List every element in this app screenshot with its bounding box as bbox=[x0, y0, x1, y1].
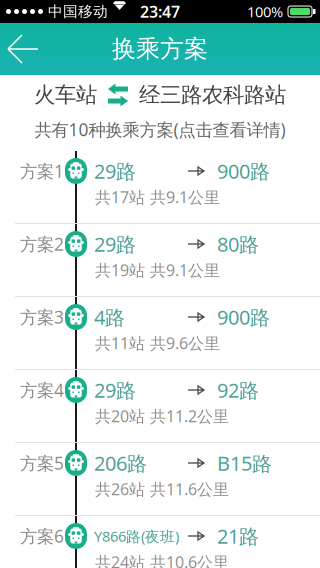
button[interactable]: 方案1 bbox=[0, 151, 320, 223]
staticText: 206路 bbox=[94, 450, 147, 476]
staticText: 100% bbox=[247, 2, 283, 21]
button[interactable]: 方案3 bbox=[0, 297, 320, 369]
staticText: 方案1 bbox=[20, 159, 64, 182]
staticText: 中国移动 bbox=[48, 2, 108, 20]
staticText: 方案4 bbox=[20, 378, 64, 401]
staticText: 29路 bbox=[94, 377, 136, 403]
staticText: 共20站 共11.2公里 bbox=[95, 405, 229, 427]
staticText: B15路 bbox=[217, 450, 272, 476]
staticText: 900路 bbox=[217, 158, 270, 184]
staticText: 换乘方案 bbox=[112, 34, 208, 64]
staticText: 29路 bbox=[94, 231, 136, 257]
staticText: 方案6 bbox=[20, 524, 64, 547]
staticText: 共19站 共9.1公里 bbox=[95, 259, 220, 281]
staticText: 共26站 共11.6公里 bbox=[95, 478, 229, 500]
staticText: 方案5 bbox=[20, 451, 64, 474]
staticText: 900路 bbox=[217, 304, 270, 330]
staticText: 经三路农科路站 bbox=[139, 82, 286, 108]
button[interactable]: 方案2 bbox=[0, 224, 320, 296]
staticText: 方案2 bbox=[20, 232, 64, 255]
staticText: 共17站 共9.1公里 bbox=[95, 186, 220, 208]
staticText: 火车站 bbox=[34, 82, 97, 108]
button[interactable]: Back bbox=[0, 23, 46, 75]
staticText: 92路 bbox=[217, 377, 259, 403]
staticText: 80路 bbox=[217, 231, 259, 257]
staticText: 4路 bbox=[94, 304, 125, 330]
staticText: 共24站 共10.6公里 bbox=[95, 551, 229, 568]
staticText: 共11站 共9.6公里 bbox=[95, 332, 220, 354]
button[interactable]: 方案4 bbox=[0, 370, 320, 442]
staticText: 29路 bbox=[94, 158, 136, 184]
button[interactable]: 方案5 bbox=[0, 443, 320, 515]
staticText: Y866路(夜班) bbox=[94, 526, 179, 546]
staticText: 方案3 bbox=[20, 305, 64, 328]
staticText: 共有10种换乘方案(点击查看详情) bbox=[34, 118, 285, 141]
button[interactable]: 方案6 bbox=[0, 516, 320, 568]
staticText: 21路 bbox=[217, 523, 259, 549]
staticText: 23:47 bbox=[140, 1, 180, 22]
